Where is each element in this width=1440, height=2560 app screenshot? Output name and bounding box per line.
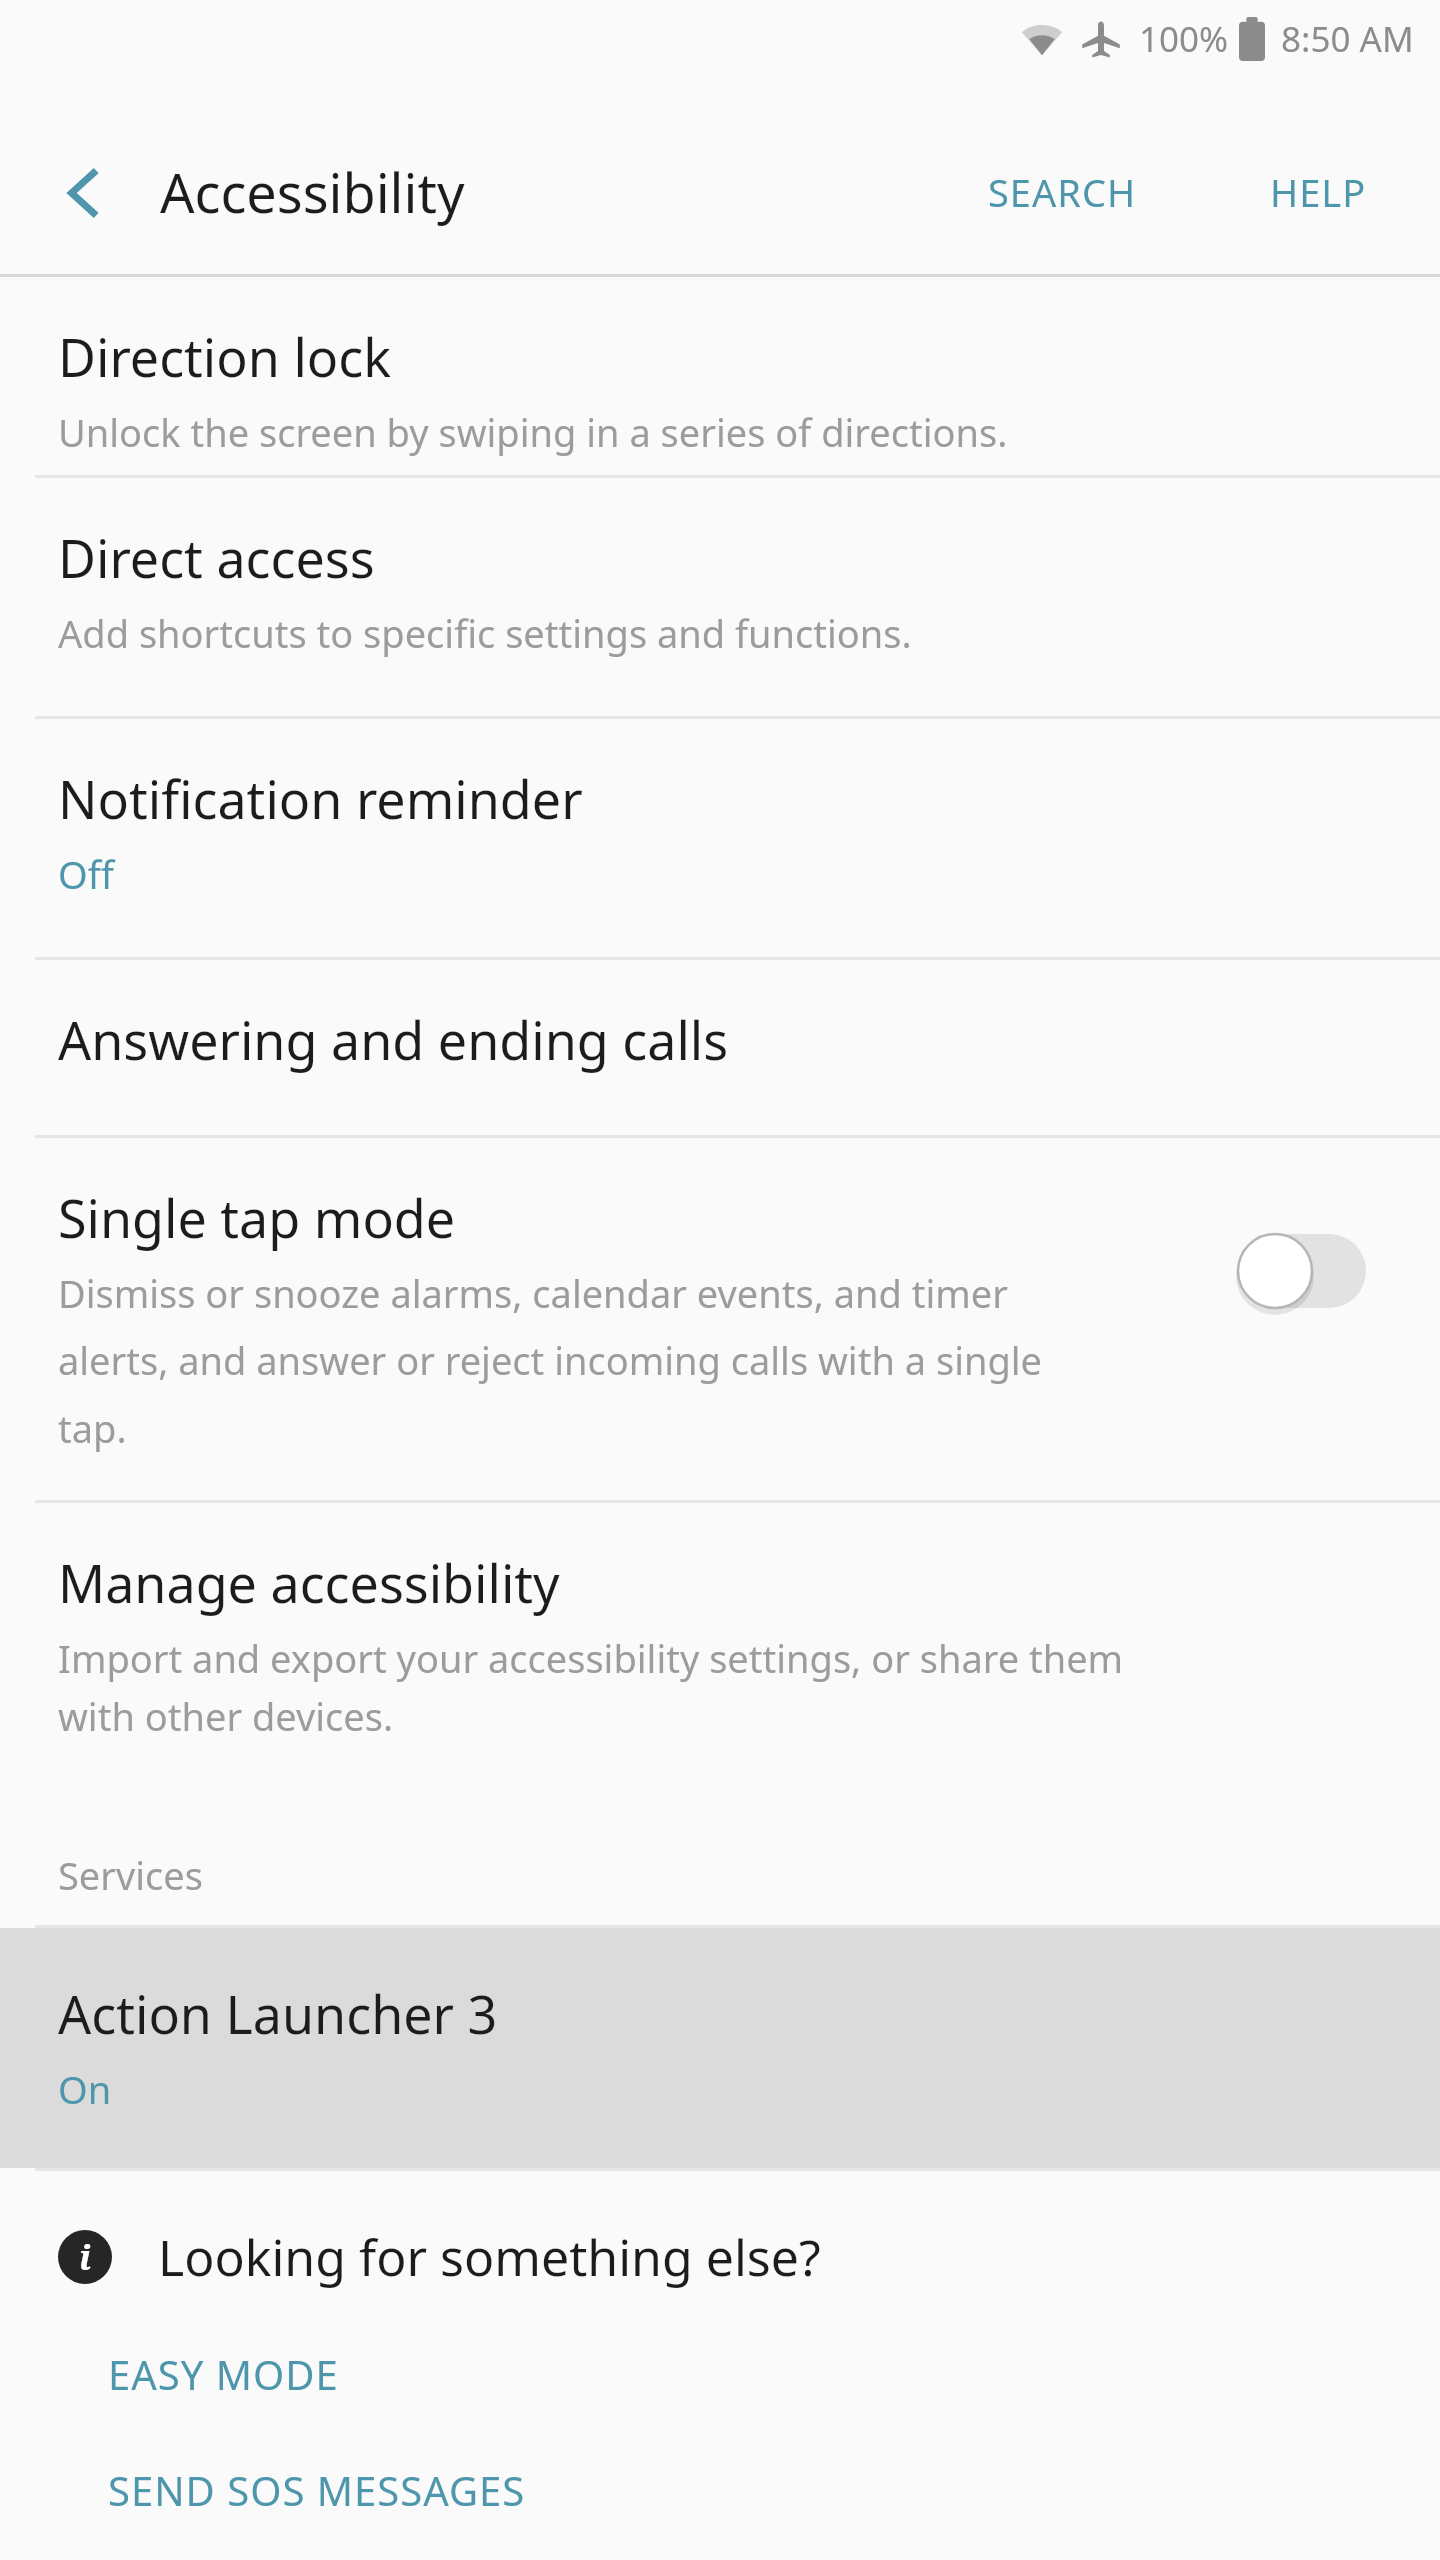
- button[interactable]: Direction lock: [0, 277, 1440, 475]
- button[interactable]: Navigate up: [30, 138, 140, 248]
- button[interactable]: Manage accessibility: [0, 1503, 1440, 1785]
- staticText: Dismiss or snooze alarms, calendar event…: [58, 1267, 1043, 1455]
- staticText: Add shortcuts to specific settings and f…: [58, 607, 912, 659]
- staticText: Direction lock: [58, 321, 392, 392]
- button[interactable]: HELP: [1240, 140, 1397, 244]
- staticText: i: [79, 2234, 92, 2280]
- staticText: Notification reminder: [58, 763, 583, 834]
- button[interactable]: Direct access: [0, 478, 1440, 716]
- staticText: EASY MODE: [108, 2347, 339, 2401]
- staticText: Direct access: [58, 522, 375, 593]
- staticText: Services: [58, 1849, 203, 1901]
- button[interactable]: EASY MODE: [100, 2325, 347, 2423]
- staticText: Manage accessibility: [58, 1547, 560, 1618]
- staticText: 8:50 AM: [1281, 15, 1414, 63]
- button[interactable]: SEARCH: [958, 140, 1167, 244]
- staticText: Import and export your accessibility set…: [58, 1632, 1124, 1742]
- button[interactable]: Answering and ending calls: [0, 960, 1440, 1135]
- staticText: SEND SOS MESSAGES: [108, 2463, 526, 2517]
- staticText: SEARCH: [988, 166, 1137, 218]
- staticText: Unlock the screen by swiping in a series…: [58, 406, 1008, 458]
- staticText: Single tap mode: [58, 1182, 456, 1253]
- staticText: Off: [58, 848, 114, 900]
- button[interactable]: Action Launcher 3: [0, 1928, 1440, 2168]
- button[interactable]: Notification reminder: [0, 719, 1440, 957]
- button[interactable]: Single tap mode: [0, 1138, 1440, 1500]
- staticText: Accessibility: [160, 155, 465, 229]
- staticText: 100%: [1139, 15, 1229, 63]
- staticText: Looking for something else?: [158, 2223, 821, 2291]
- staticText: Action Launcher 3: [58, 1978, 498, 2049]
- button[interactable]: SEND SOS MESSAGES: [100, 2441, 534, 2539]
- button[interactable]: Single tap mode: [1236, 1228, 1370, 1314]
- staticText: HELP: [1270, 166, 1367, 218]
- staticText: Answering and ending calls: [58, 1004, 729, 1075]
- staticText: On: [58, 2063, 112, 2115]
